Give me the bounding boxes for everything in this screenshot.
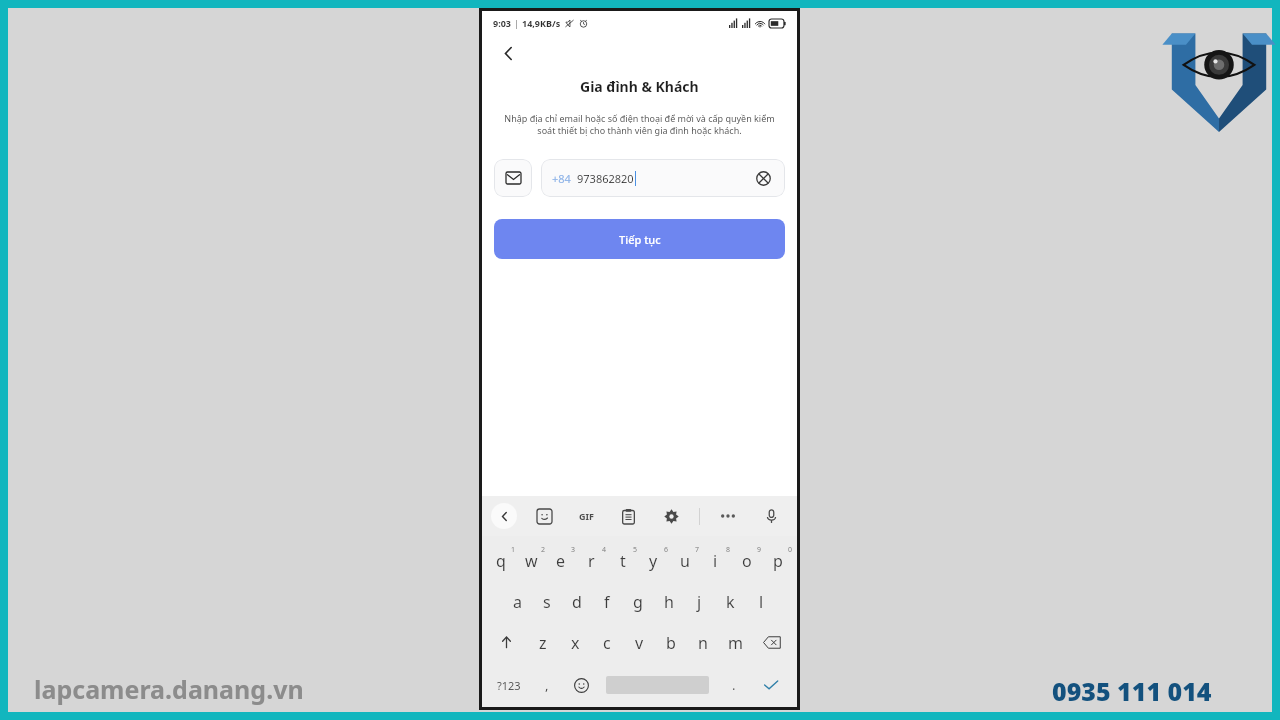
- staticText: p: [773, 550, 783, 572]
- staticText: Nhập địa chỉ email hoặc số điện thoại để…: [504, 112, 775, 137]
- staticText: ,: [545, 676, 549, 694]
- staticText: GIF: [579, 510, 594, 522]
- button[interactable]: Back: [490, 35, 526, 71]
- staticText: q: [496, 550, 506, 572]
- staticText: v: [635, 632, 644, 654]
- button[interactable]: Use email: [494, 159, 532, 197]
- staticText: b: [666, 632, 676, 654]
- button[interactable]: Enter: [751, 663, 791, 707]
- staticText: +84: [552, 171, 571, 186]
- staticText: c: [603, 632, 611, 654]
- staticText: j: [697, 591, 702, 613]
- staticText: lapcamera.danang.vn: [34, 672, 304, 706]
- button[interactable]: k: [715, 581, 746, 622]
- staticText: f: [604, 591, 610, 613]
- staticText: 7: [695, 545, 700, 555]
- button[interactable]: +84: [541, 159, 785, 197]
- button[interactable]: c: [591, 622, 623, 663]
- button[interactable]: s: [532, 581, 562, 622]
- button[interactable]: a: [502, 581, 532, 622]
- staticText: 9: [757, 545, 762, 555]
- button[interactable]: w: [516, 540, 546, 581]
- button[interactable]: p: [762, 540, 793, 581]
- button[interactable]: Hide toolbar: [491, 503, 517, 529]
- button[interactable]: f: [592, 581, 622, 622]
- button[interactable]: ,: [530, 663, 564, 707]
- button[interactable]: j: [684, 581, 715, 622]
- staticText: m: [728, 632, 743, 654]
- button[interactable]: q: [486, 540, 516, 581]
- staticText: 0935 111 014: [1052, 674, 1212, 708]
- staticText: e: [556, 550, 566, 572]
- staticText: ?123: [497, 678, 521, 693]
- staticText: 8: [726, 545, 731, 555]
- staticText: y: [649, 550, 658, 572]
- staticText: Tiếp tục: [619, 232, 661, 247]
- staticText: k: [726, 591, 735, 613]
- button[interactable]: GIF: [571, 501, 601, 531]
- button[interactable]: u: [669, 540, 700, 581]
- button[interactable]: Shift: [486, 622, 527, 663]
- staticText: .: [732, 676, 736, 694]
- button[interactable]: x: [559, 622, 591, 663]
- button[interactable]: Settings: [656, 501, 686, 531]
- button[interactable]: v: [623, 622, 655, 663]
- button[interactable]: l: [746, 581, 777, 622]
- button[interactable]: n: [687, 622, 719, 663]
- staticText: l: [759, 591, 764, 613]
- button[interactable]: More: [713, 501, 743, 531]
- button[interactable]: ?123: [488, 663, 530, 707]
- button[interactable]: t: [607, 540, 638, 581]
- button[interactable]: Backspace: [751, 622, 793, 663]
- button[interactable]: h: [653, 581, 684, 622]
- staticText: n: [698, 632, 708, 654]
- staticText: 0: [788, 545, 793, 555]
- staticText: a: [513, 591, 522, 613]
- staticText: 6: [664, 545, 669, 555]
- staticText: s: [543, 591, 551, 613]
- button[interactable]: e: [546, 540, 576, 581]
- staticText: 2: [541, 545, 546, 555]
- button[interactable]: b: [655, 622, 687, 663]
- staticText: g: [633, 591, 643, 613]
- staticText: 9:03: [493, 17, 511, 29]
- button[interactable]: m: [719, 622, 751, 663]
- button[interactable]: Voice input: [756, 501, 786, 531]
- button[interactable]: z: [527, 622, 559, 663]
- staticText: i: [713, 550, 718, 572]
- staticText: x: [571, 632, 580, 654]
- staticText: 3: [571, 545, 576, 555]
- button[interactable]: Sticker: [529, 501, 559, 531]
- button[interactable]: Emoji: [564, 663, 598, 707]
- button[interactable]: Clear: [752, 167, 774, 189]
- button[interactable]: d: [562, 581, 592, 622]
- staticText: w: [525, 550, 538, 572]
- staticText: |: [514, 17, 519, 29]
- staticText: Gia đình & Khách: [580, 77, 699, 96]
- staticText: 5: [633, 545, 638, 555]
- staticText: t: [620, 550, 626, 572]
- staticText: z: [539, 632, 547, 654]
- button[interactable]: Clipboard: [613, 501, 643, 531]
- staticText: o: [742, 550, 752, 572]
- button[interactable]: o: [731, 540, 762, 581]
- staticText: h: [664, 591, 674, 613]
- button[interactable]: y: [638, 540, 669, 581]
- button[interactable]: Tiếp tục: [494, 219, 785, 259]
- staticText: 14,9KB/s: [522, 17, 561, 29]
- staticText: 4: [602, 545, 607, 555]
- staticText: u: [680, 550, 690, 572]
- button[interactable]: i: [700, 540, 731, 581]
- staticText: d: [572, 591, 582, 613]
- staticText: 973862820: [577, 171, 634, 186]
- button[interactable]: g: [622, 581, 653, 622]
- staticText: 1: [511, 545, 516, 555]
- button[interactable]: .: [717, 663, 751, 707]
- staticText: r: [588, 550, 595, 572]
- button[interactable]: r: [576, 540, 607, 581]
